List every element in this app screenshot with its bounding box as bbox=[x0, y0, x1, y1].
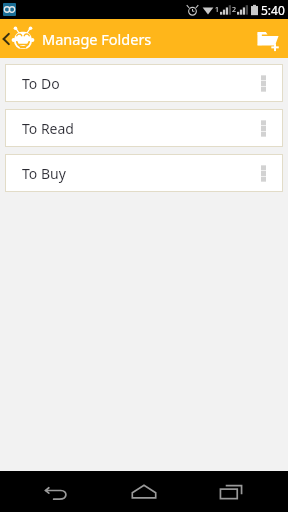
staticText: 1 bbox=[215, 5, 220, 15]
button[interactable]: More options for To Buy bbox=[246, 154, 280, 192]
button[interactable]: To Buy bbox=[5, 154, 283, 192]
button[interactable]: New folder bbox=[248, 19, 288, 58]
button[interactable]: Home bbox=[114, 471, 174, 512]
other: Back bbox=[2, 31, 10, 47]
staticText: Manage Folders bbox=[42, 29, 152, 49]
staticText: 2 bbox=[232, 5, 237, 15]
staticText: 5:40 bbox=[261, 2, 285, 18]
button[interactable]: Back bbox=[0, 27, 152, 51]
staticText: To Do bbox=[22, 74, 60, 93]
button[interactable]: To Read bbox=[5, 109, 283, 147]
button[interactable]: More options for To Read bbox=[246, 109, 280, 147]
button[interactable]: To Do bbox=[5, 64, 283, 102]
staticText: To Buy bbox=[22, 164, 66, 183]
button[interactable]: Recent apps bbox=[201, 471, 261, 512]
staticText: To Read bbox=[22, 119, 74, 138]
button[interactable]: Back bbox=[27, 471, 87, 512]
button[interactable]: More options for To Do bbox=[246, 64, 280, 102]
